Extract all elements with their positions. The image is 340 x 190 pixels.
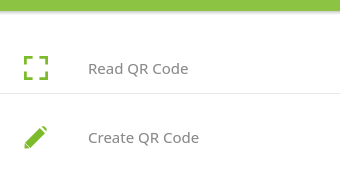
staticText: Create QR Code bbox=[88, 127, 200, 147]
staticText: Read QR Code bbox=[88, 58, 189, 78]
button[interactable]: Create QR Code bbox=[0, 112, 340, 162]
button[interactable]: Read QR Code bbox=[0, 43, 340, 93]
